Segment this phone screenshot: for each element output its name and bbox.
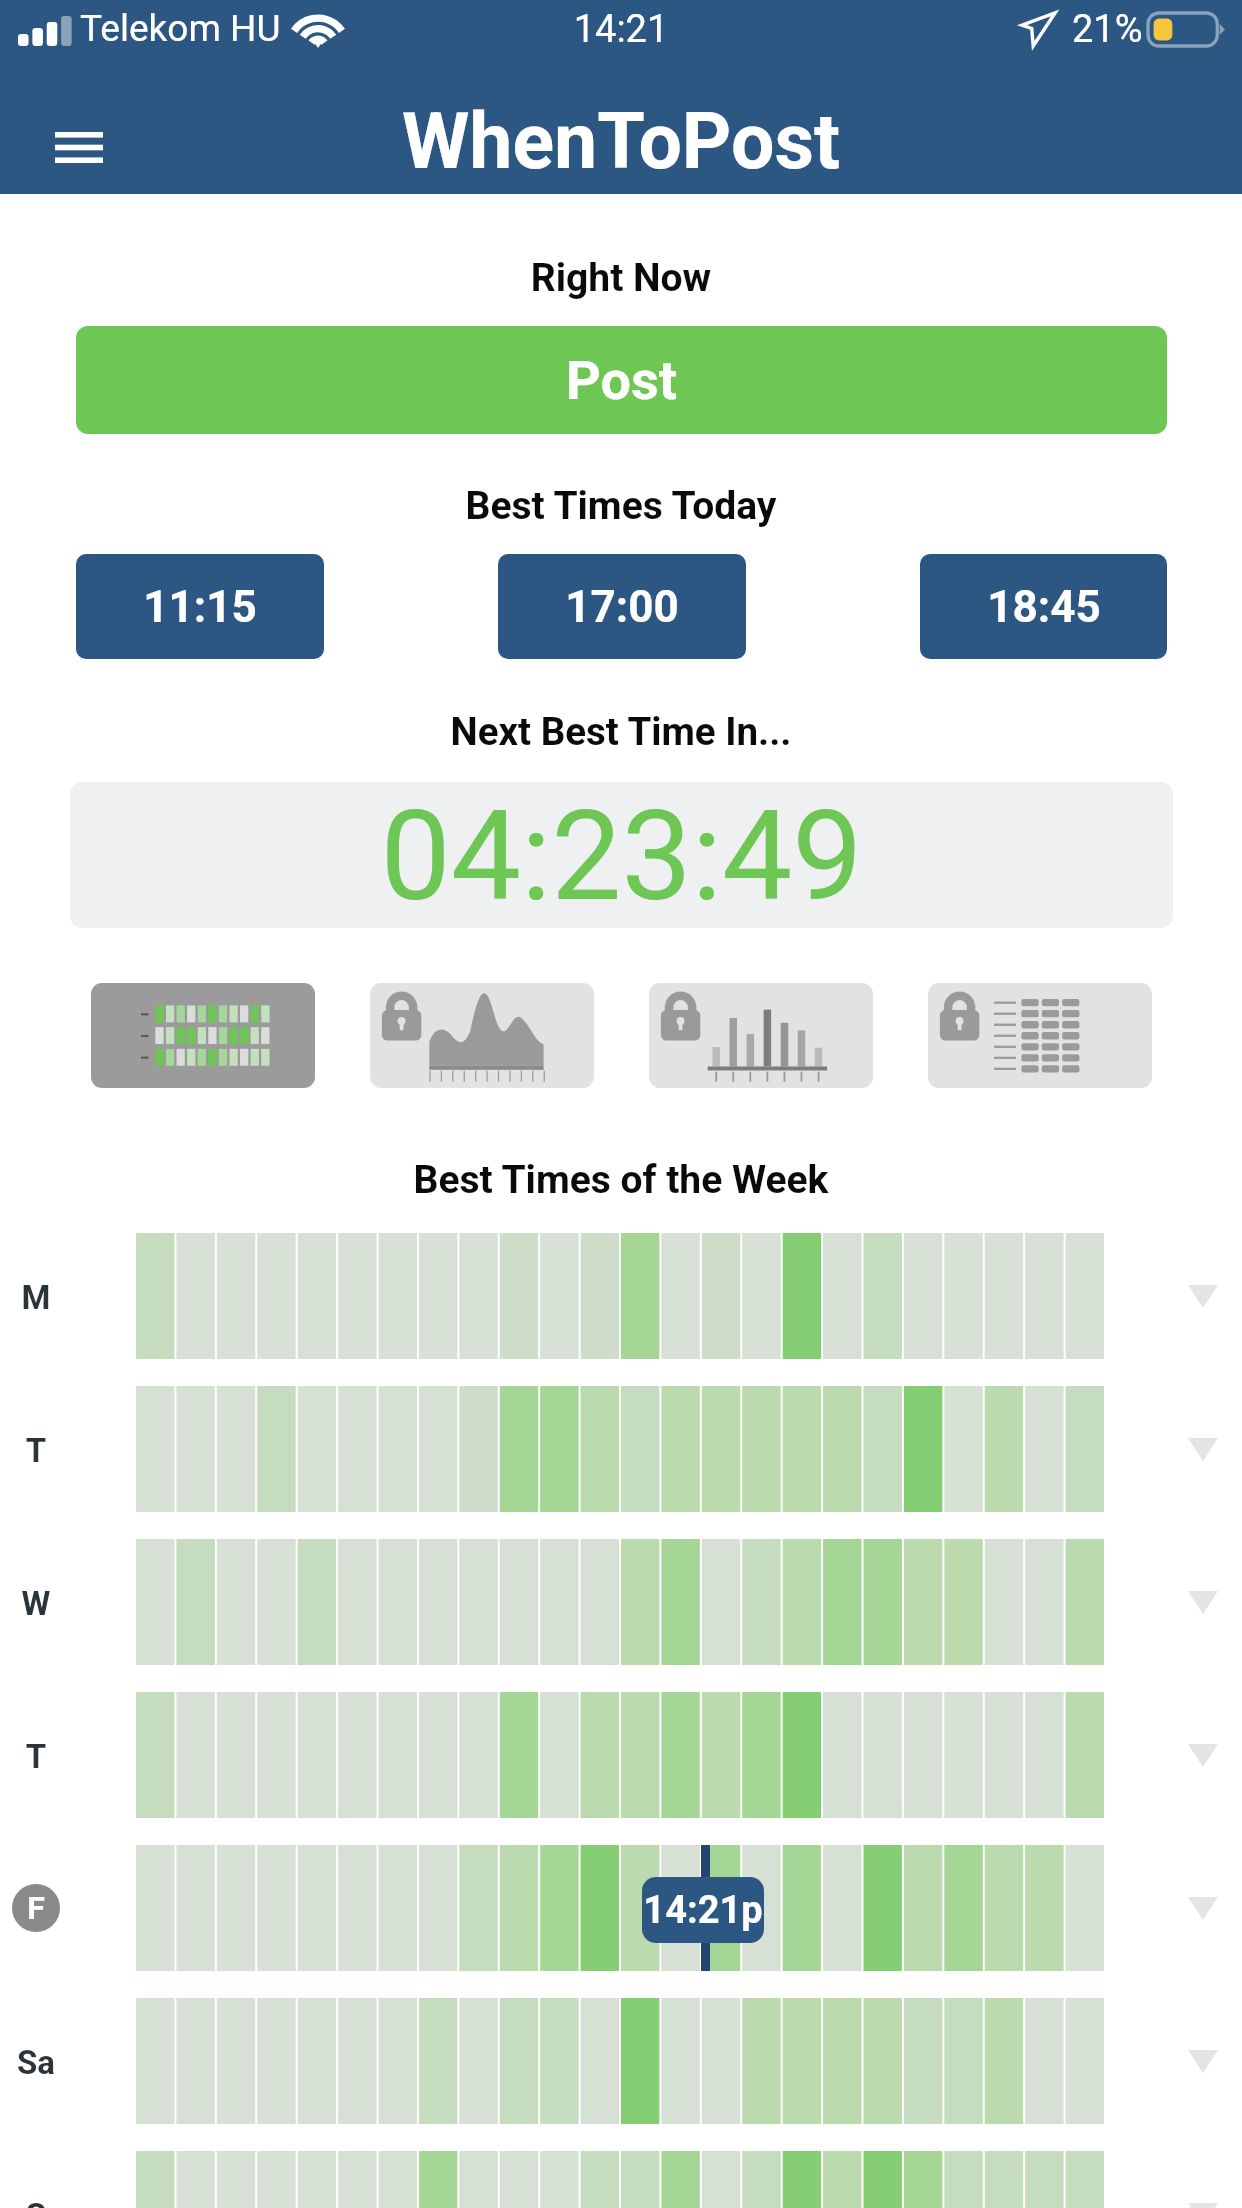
staticText: F: [27, 1889, 45, 1927]
staticText: M: [0, 1278, 72, 1317]
button[interactable]: Schedule list (locked): [928, 983, 1152, 1088]
staticText: Telekom HU: [80, 7, 380, 50]
button[interactable]: Tuesday: [0, 1386, 1242, 1512]
staticText: Sa: [0, 2043, 72, 2082]
staticText: W: [0, 1584, 72, 1623]
staticText: Right Now: [0, 255, 1242, 301]
staticText: Best Times of the Week: [0, 1157, 1242, 1203]
staticText: Next Best Time In...: [0, 709, 1242, 754]
staticText: S: [0, 2196, 72, 2208]
staticText: WhenToPost: [0, 97, 1242, 187]
button[interactable]: Wednesday: [0, 1539, 1242, 1665]
button[interactable]: 11:15: [76, 554, 324, 659]
button[interactable]: Bar chart (locked): [649, 983, 873, 1088]
button[interactable]: 18:45: [920, 554, 1167, 659]
button[interactable]: Thursday: [0, 1692, 1242, 1818]
button[interactable]: Post: [76, 326, 1167, 434]
staticText: 21%: [1072, 7, 1242, 52]
button[interactable]: Monday: [0, 1233, 1242, 1359]
staticText: Best Times Today: [0, 483, 1242, 529]
staticText: 18:45: [987, 581, 1101, 633]
staticText: 14:21p: [643, 1888, 763, 1933]
staticText: 17:00: [565, 581, 679, 633]
button[interactable]: Saturday: [0, 1998, 1242, 2124]
button[interactable]: Hourly heatmap: [91, 983, 315, 1088]
staticText: 11:15: [143, 581, 257, 633]
button[interactable]: Activity graph (locked): [370, 983, 594, 1088]
button[interactable]: Sunday: [0, 2151, 1242, 2208]
staticText: 04:23:49: [380, 783, 863, 928]
staticText: T: [0, 1737, 72, 1776]
button[interactable]: Friday: [0, 1845, 1242, 1971]
staticText: T: [0, 1431, 72, 1470]
button[interactable]: Open navigation menu: [37, 112, 121, 182]
staticText: 14:21: [0, 7, 1242, 52]
staticText: Post: [566, 349, 677, 412]
button[interactable]: 17:00: [498, 554, 746, 659]
